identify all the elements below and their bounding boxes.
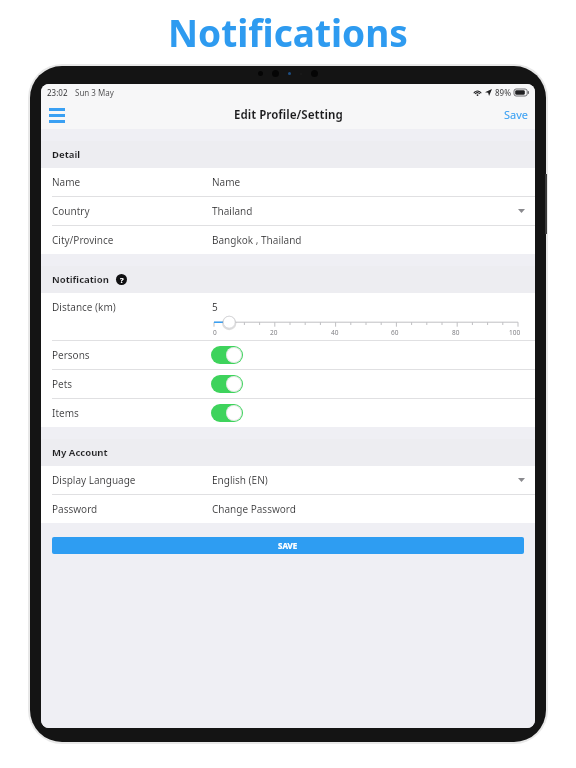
button[interactable]: Menu <box>45 103 69 127</box>
staticText: 23:02 <box>47 87 68 98</box>
button[interactable]: Save <box>498 102 535 127</box>
staticText: Name <box>52 175 81 189</box>
button[interactable]: Distance slider <box>210 317 522 337</box>
staticText: Save <box>504 107 529 122</box>
staticText: City/Province <box>52 233 114 247</box>
staticText: Thailand <box>212 204 253 218</box>
staticText: Name <box>212 175 241 189</box>
staticText: 5 <box>212 300 218 314</box>
button[interactable]: City/Province <box>41 226 535 254</box>
staticText: Change Password <box>212 502 296 516</box>
staticText: 100 <box>509 328 521 337</box>
button[interactable]: SAVE <box>52 537 524 554</box>
staticText: Pets <box>52 377 73 391</box>
staticText: Edit Profile/Setting <box>234 107 343 123</box>
button[interactable]: Items <box>41 399 535 427</box>
staticText: My Account <box>52 446 108 459</box>
button[interactable]: Help <box>116 274 127 285</box>
staticText: Notification <box>52 273 109 286</box>
staticText: 60 <box>391 328 399 337</box>
staticText: SAVE <box>278 540 298 551</box>
button[interactable]: Persons <box>41 341 535 369</box>
staticText: 40 <box>331 328 339 337</box>
staticText: Notifications <box>168 7 408 57</box>
staticText: Password <box>52 502 98 516</box>
staticText: Display Language <box>52 473 136 487</box>
button[interactable] <box>211 346 243 364</box>
staticText: Items <box>52 406 79 420</box>
button[interactable]: Name <box>41 168 535 196</box>
button[interactable]: Display Language <box>41 466 535 494</box>
staticText: 0 <box>213 328 217 337</box>
staticText: ? <box>120 275 124 285</box>
staticText: Detail <box>52 148 81 161</box>
button[interactable] <box>211 404 243 422</box>
button[interactable]: Password <box>41 495 535 523</box>
staticText: 89% <box>495 87 511 98</box>
button[interactable]: Country <box>41 197 535 225</box>
staticText: Persons <box>52 348 90 362</box>
button[interactable]: Pets <box>41 370 535 398</box>
staticText: 20 <box>270 328 278 337</box>
staticText: Distance (km) <box>52 300 116 314</box>
staticText: Bangkok , Thailand <box>212 233 302 247</box>
staticText: Country <box>52 204 90 218</box>
staticText: Sun 3 May <box>75 87 114 98</box>
staticText: 80 <box>452 328 460 337</box>
button[interactable] <box>211 375 243 393</box>
staticText: English (EN) <box>212 473 268 487</box>
